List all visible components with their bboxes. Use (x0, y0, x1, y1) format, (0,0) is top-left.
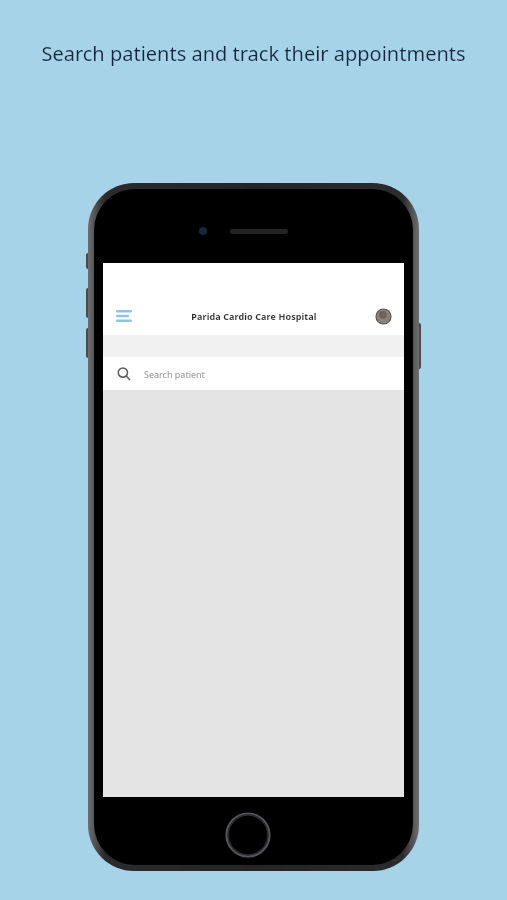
staticText: Parida Cardio Care Hospital (191, 310, 317, 322)
staticText: Search patient (144, 368, 205, 380)
button[interactable]: Profile (362, 297, 404, 335)
staticText: Search patients and track their appointm… (40, 40, 467, 67)
button[interactable]: Open navigation menu (103, 297, 145, 335)
button[interactable]: Search patient (103, 357, 404, 390)
button[interactable]: Home (225, 812, 271, 858)
